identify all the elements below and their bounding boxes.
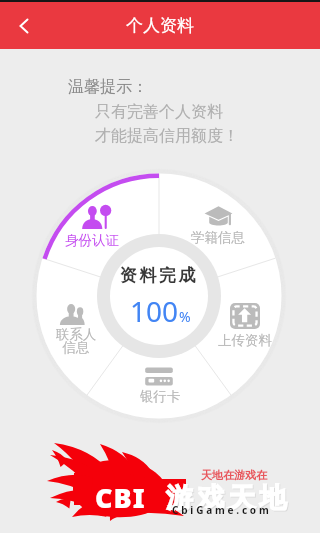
staticText: 游戏天地	[167, 482, 292, 516]
staticText: 身份认证	[62, 232, 122, 249]
staticText: 个人资料	[126, 15, 194, 36]
staticText: 银行卡	[130, 388, 190, 405]
staticText: CbiGame.com	[172, 503, 272, 517]
staticText: 只有完善个人资料	[95, 102, 223, 122]
staticText: CBI	[95, 479, 146, 516]
button[interactable]	[215, 301, 275, 362]
staticText: 资料完成	[109, 265, 209, 286]
button[interactable]: Back	[2, 4, 46, 48]
staticText: 上传资料	[215, 332, 275, 349]
button[interactable]	[130, 365, 190, 417]
button[interactable]	[62, 204, 122, 262]
staticText: 联系人 信息	[46, 326, 106, 356]
staticText: 温馨提示：	[68, 77, 148, 97]
button[interactable]	[46, 302, 106, 357]
staticText: 才能提高信用额度！	[95, 126, 239, 146]
staticText: 游戏天地	[166, 481, 291, 515]
staticText: 学籍信息	[188, 229, 248, 246]
staticText: 天地在游戏在	[201, 468, 267, 482]
staticText: 100	[130, 292, 179, 330]
button[interactable]	[188, 203, 248, 259]
staticText: %	[179, 307, 191, 326]
